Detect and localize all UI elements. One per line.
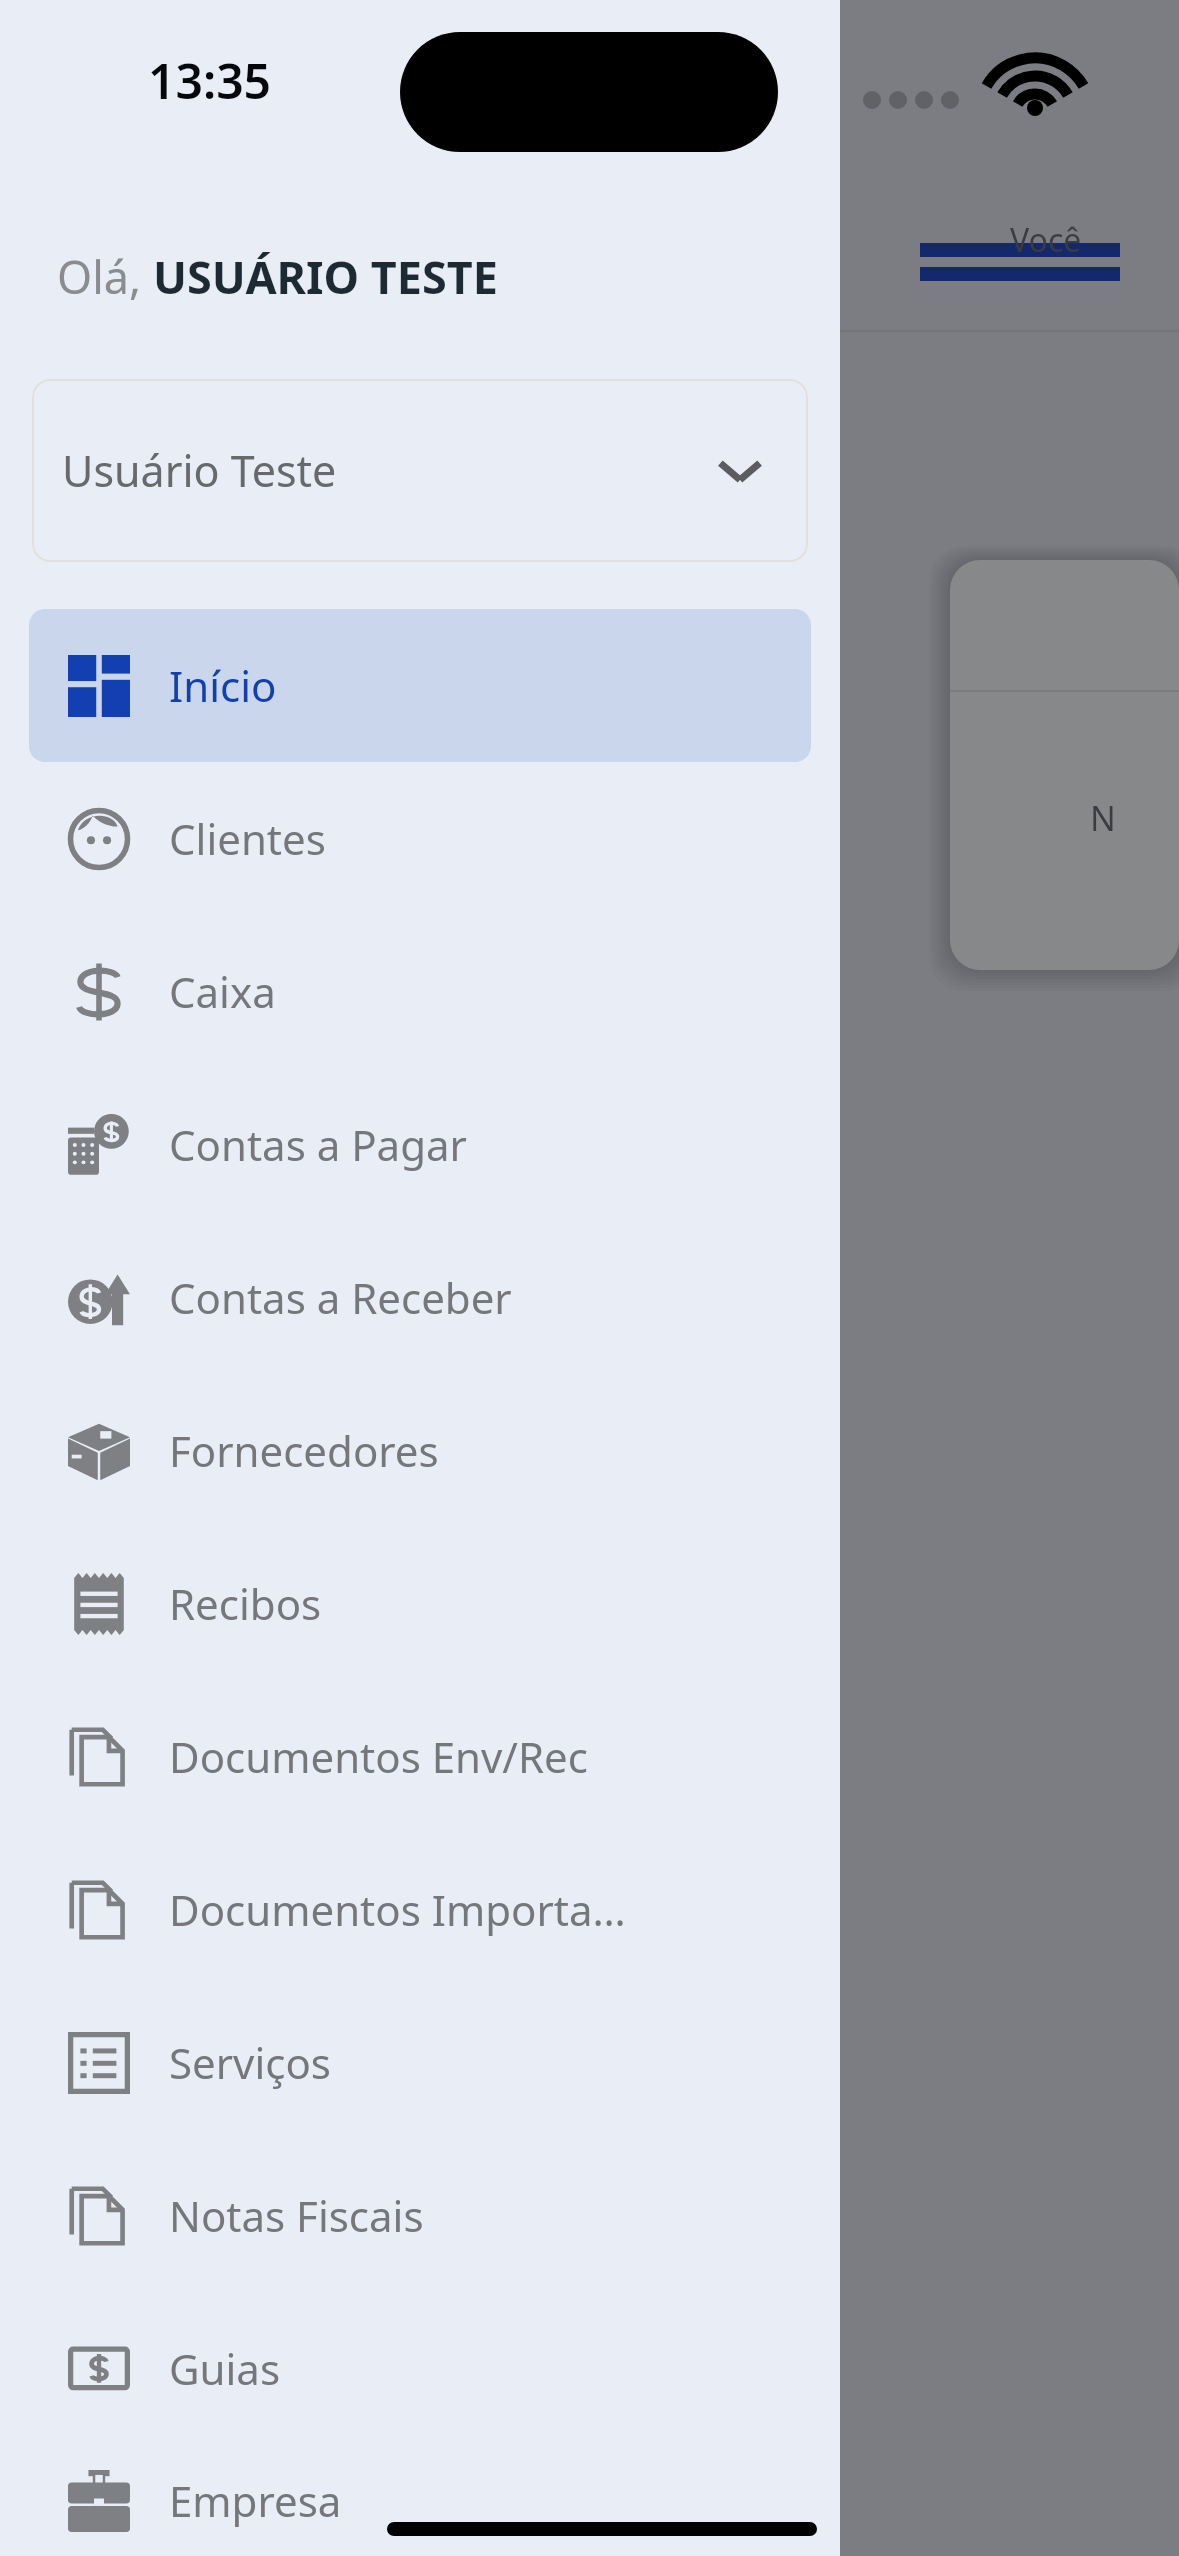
staticText: Você <box>1010 218 1082 262</box>
button[interactable]: Início <box>29 609 811 762</box>
button[interactable]: Fornecedores <box>29 1374 811 1527</box>
button[interactable]: Contas a Receber <box>29 1221 811 1374</box>
staticText: Clientes <box>169 810 326 867</box>
staticText: Documentos Env/Rec <box>169 1728 588 1785</box>
staticText: Contas a Receber <box>169 1269 512 1326</box>
staticText: Fornecedores <box>169 1422 439 1479</box>
button[interactable]: Usuário Teste <box>32 379 808 562</box>
staticText: Contas a Pagar <box>169 1116 467 1173</box>
staticText: Serviços <box>169 2034 331 2091</box>
button[interactable]: Documentos Importa… <box>29 1833 811 1986</box>
staticText: Início <box>169 657 277 714</box>
button[interactable]: Empresa <box>29 2445 811 2556</box>
staticText: Guias <box>169 2340 281 2397</box>
button[interactable]: Documentos Env/Rec <box>29 1680 811 1833</box>
button[interactable]: Recibos <box>29 1527 811 1680</box>
staticText: N <box>1090 795 1116 841</box>
button[interactable]: Serviços <box>29 1986 811 2139</box>
staticText: Notas Fiscais <box>169 2187 424 2244</box>
staticText: Documentos Importa… <box>169 1881 626 1938</box>
button[interactable]: Notas Fiscais <box>29 2139 811 2292</box>
button[interactable]: Clientes <box>29 762 811 915</box>
staticText: USUÁRIO TESTE <box>153 246 498 307</box>
staticText: Usuário Teste <box>62 441 337 500</box>
staticText: Recibos <box>169 1575 322 1632</box>
button[interactable]: Contas a Pagar <box>29 1068 811 1221</box>
staticText: 13:35 <box>148 48 272 113</box>
staticText: Caixa <box>169 963 276 1020</box>
button[interactable]: Guias <box>29 2292 811 2445</box>
button[interactable]: Caixa <box>29 915 811 1068</box>
staticText: Olá, <box>57 246 153 307</box>
staticText: Empresa <box>169 2472 342 2529</box>
